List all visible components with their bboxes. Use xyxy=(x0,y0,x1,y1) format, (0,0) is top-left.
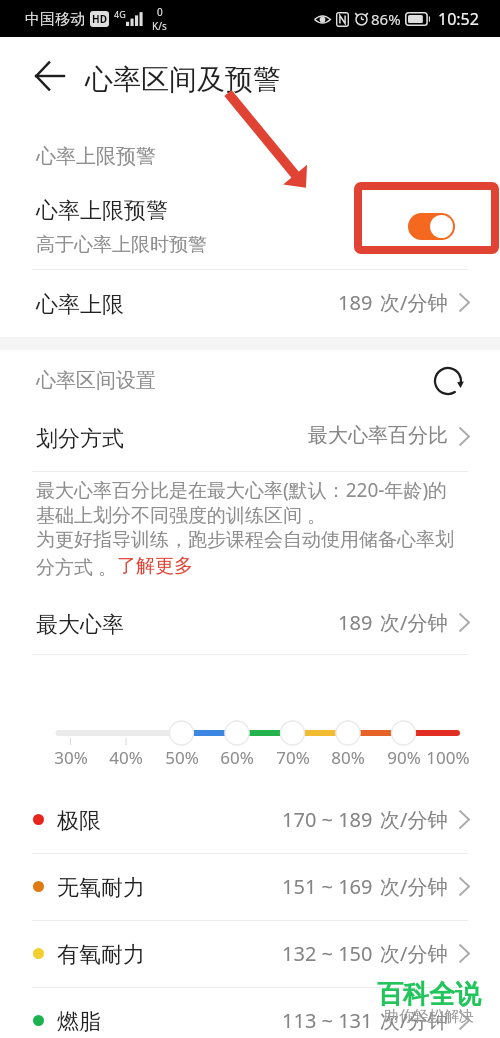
staticText: 86% xyxy=(371,9,401,29)
staticText: 次/分钟 xyxy=(380,609,448,636)
staticText: 分方式 。 xyxy=(36,554,117,580)
staticText: 燃脂 xyxy=(57,1008,101,1036)
staticText: 助你轻松解决 xyxy=(384,1007,474,1026)
staticText: 中国移动 xyxy=(25,10,85,29)
staticText: 次/分钟 xyxy=(380,873,448,900)
staticText: 189 xyxy=(338,609,373,636)
staticText: 基础上划分不同强度的训练区间 。 xyxy=(36,502,326,528)
staticText: 50% xyxy=(165,746,199,769)
button[interactable]: Back xyxy=(28,54,72,98)
staticText: 151 ~ 169 xyxy=(282,873,373,900)
staticText: 189 xyxy=(338,289,373,316)
staticText: 0 xyxy=(157,5,163,19)
staticText: HD xyxy=(92,12,107,26)
button[interactable] xyxy=(0,270,500,337)
button[interactable] xyxy=(0,988,500,1038)
button[interactable] xyxy=(0,590,500,654)
staticText: 80% xyxy=(331,746,365,769)
staticText: 最大心率百分比 xyxy=(308,423,448,448)
staticText: 心率区间及预警 xyxy=(85,62,281,97)
button[interactable]: Reset heart rate zones xyxy=(430,363,466,399)
staticText: 90% xyxy=(387,746,421,769)
staticText: 次/分钟 xyxy=(380,289,448,316)
staticText: 划分方式 xyxy=(36,425,124,453)
button[interactable] xyxy=(0,854,500,921)
staticText: 高于心率上限时预警 xyxy=(36,233,207,257)
staticText: 30% xyxy=(54,746,88,769)
staticText: 有氧耐力 xyxy=(57,941,145,969)
staticText: 无氧耐力 xyxy=(57,874,145,902)
staticText: 113 ~ 131 xyxy=(282,1007,373,1034)
button[interactable] xyxy=(0,403,500,463)
staticText: 次/分钟 xyxy=(380,806,448,833)
staticText: 心率区间设置 xyxy=(36,368,156,393)
staticText: 4G xyxy=(114,8,126,20)
staticText: 次/分钟 xyxy=(380,940,448,967)
staticText: 170 ~ 189 xyxy=(282,806,373,833)
button[interactable]: 了解更多 xyxy=(117,554,193,578)
staticText: 心率上限预警 xyxy=(36,144,156,169)
staticText: 百科全说 xyxy=(377,978,481,1011)
staticText: 最大心率 xyxy=(36,611,124,639)
staticText: 60% xyxy=(220,746,254,769)
staticText: 70% xyxy=(276,746,310,769)
staticText: 心率上限预警 xyxy=(36,197,168,225)
staticText: 心率上限 xyxy=(36,291,124,319)
button[interactable]: Toggle heart rate upper limit alert xyxy=(408,213,455,240)
staticText: K/s xyxy=(152,19,167,33)
staticText: 最大心率百分比是在最大心率(默认：220-年龄)的 xyxy=(36,477,448,503)
staticText: 10:52 xyxy=(438,8,479,30)
staticText: 40% xyxy=(109,746,143,769)
staticText: 132 ~ 150 xyxy=(282,940,373,967)
button[interactable] xyxy=(0,186,500,268)
staticText: 100% xyxy=(426,746,470,769)
button[interactable] xyxy=(0,921,500,988)
button[interactable] xyxy=(0,787,500,854)
staticText: 极限 xyxy=(57,807,101,835)
staticText: 为更好指导训练，跑步课程会自动使用储备心率划 xyxy=(36,528,454,552)
staticText: 次/分钟 xyxy=(380,1007,448,1034)
